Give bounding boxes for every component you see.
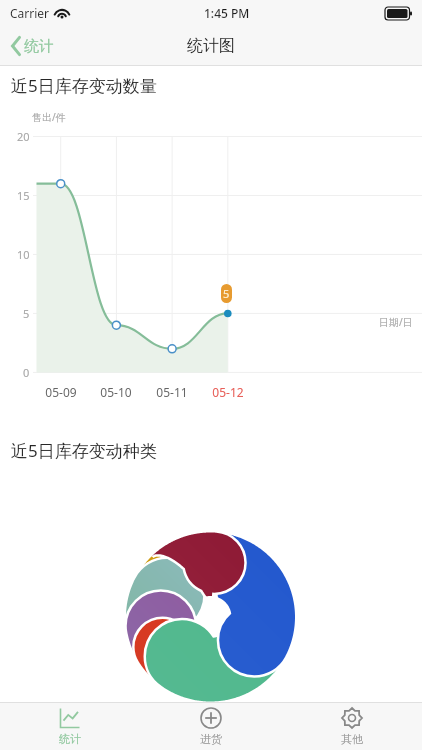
- staticText: 其他: [341, 732, 363, 746]
- staticText: 日期/日: [379, 315, 413, 329]
- other: 统计: [59, 707, 81, 729]
- staticText: 统计图: [187, 36, 235, 56]
- staticText: 05-10: [86, 384, 146, 400]
- staticText: 10: [17, 247, 30, 262]
- staticText: 统计: [24, 37, 54, 56]
- staticText: 统计: [59, 732, 81, 746]
- staticText: 近5日库存变动数量: [11, 74, 157, 97]
- other: 其他: [341, 707, 363, 729]
- button[interactable]: 统计: [8, 26, 54, 66]
- staticText: 进货: [200, 732, 222, 746]
- staticText: 售出/件: [32, 110, 66, 124]
- other: 进货: [200, 707, 222, 729]
- staticText: 15: [17, 188, 30, 203]
- button[interactable]: 统计: [0, 702, 140, 750]
- staticText: 05-12: [198, 384, 258, 400]
- staticText: 20: [17, 129, 30, 144]
- staticText: 5: [223, 286, 230, 301]
- staticText: 1:45 PM: [204, 5, 250, 21]
- staticText: 近5日库存变动种类: [11, 439, 157, 462]
- staticText: 05-11: [142, 384, 202, 400]
- staticText: 0: [23, 365, 30, 380]
- staticText: Carrier: [10, 5, 50, 21]
- staticText: 5: [23, 306, 30, 321]
- button[interactable]: 其他: [281, 702, 422, 750]
- staticText: 05-09: [31, 384, 91, 400]
- button[interactable]: 进货: [140, 702, 281, 750]
